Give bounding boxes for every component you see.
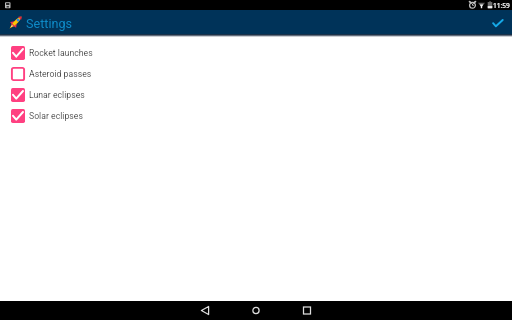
staticText: Solar eclipses — [29, 111, 83, 121]
button[interactable]: Lunar eclipses — [0, 84, 512, 105]
button[interactable]: Done — [488, 12, 508, 32]
button[interactable]: Recents — [291, 301, 323, 320]
button[interactable]: Solar eclipses — [0, 105, 512, 126]
staticText: Settings — [26, 16, 72, 31]
button[interactable]: Home — [240, 301, 272, 320]
staticText: Asteroid passes — [29, 69, 92, 79]
staticText: Lunar eclipses — [29, 90, 85, 100]
button[interactable]: Asteroid passes — [0, 63, 512, 84]
button[interactable]: Rocket launches — [0, 42, 512, 63]
button[interactable]: Back — [189, 301, 221, 320]
staticText: Rocket launches — [29, 48, 93, 58]
staticText: 11:59 — [493, 1, 510, 10]
